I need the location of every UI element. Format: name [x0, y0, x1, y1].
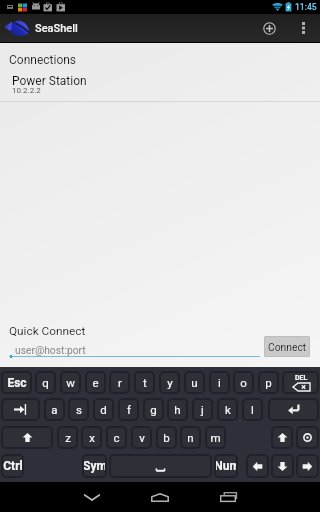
button[interactable]: u: [184, 371, 205, 394]
staticText: p: [265, 376, 272, 389]
staticText: g: [150, 403, 157, 416]
button[interactable]: right: [296, 454, 319, 478]
button[interactable]: k: [217, 398, 238, 421]
button[interactable]: m: [205, 426, 226, 449]
staticText: Power Station: [12, 74, 87, 88]
button[interactable]: Add connection: [256, 14, 283, 42]
button[interactable]: q: [35, 371, 56, 394]
button[interactable]: x: [81, 426, 102, 449]
button[interactable]: p: [258, 371, 279, 394]
staticText: v: [139, 431, 145, 444]
staticText: SeaShell: [35, 22, 78, 35]
staticText: q: [42, 376, 49, 389]
staticText: DEL: [295, 374, 308, 382]
button[interactable]: Connect: [264, 336, 310, 357]
button[interactable]: dot: [296, 426, 319, 449]
staticText: d: [100, 403, 107, 416]
button[interactable]: Hide keyboard: [68, 482, 116, 512]
staticText: Connect: [268, 341, 307, 353]
button[interactable]: s: [68, 398, 89, 421]
staticText: a: [51, 403, 58, 416]
staticText: l: [251, 403, 254, 416]
button[interactable]: e: [85, 371, 106, 394]
button[interactable]: a: [44, 398, 65, 421]
button[interactable]: Home: [136, 482, 184, 512]
staticText: h: [174, 403, 181, 416]
staticText: m: [210, 431, 221, 444]
staticText: k: [225, 403, 231, 416]
button[interactable]: r: [109, 371, 130, 394]
staticText: w: [66, 376, 75, 389]
button[interactable]: v: [131, 426, 152, 449]
button[interactable]: h: [167, 398, 188, 421]
staticText: s: [76, 403, 82, 416]
button[interactable]: z: [57, 426, 78, 449]
button[interactable]: shift: [1, 426, 53, 449]
button[interactable]: j: [192, 398, 213, 421]
staticText: Connections: [9, 53, 77, 67]
staticText: Sym: [83, 459, 107, 473]
button[interactable]: t: [134, 371, 155, 394]
button[interactable]: i: [209, 371, 230, 394]
button[interactable]: Sym: [82, 454, 107, 478]
button[interactable]: left: [246, 454, 269, 478]
button[interactable]: More options: [292, 14, 314, 42]
staticText: i: [218, 376, 221, 389]
button[interactable]: enter: [268, 398, 319, 421]
button[interactable]: Recent apps: [204, 482, 252, 512]
staticText: user@host:port: [15, 344, 86, 356]
button[interactable]: d: [93, 398, 114, 421]
staticText: x: [89, 431, 95, 444]
staticText: z: [65, 431, 71, 444]
button[interactable]: l: [242, 398, 263, 421]
button[interactable]: tab: [1, 398, 40, 421]
staticText: c: [113, 431, 120, 444]
staticText: b: [163, 431, 170, 444]
button[interactable]: Num: [214, 454, 238, 478]
button[interactable]: n: [180, 426, 201, 449]
button[interactable]: o: [233, 371, 254, 394]
staticText: j: [201, 403, 204, 416]
staticText: r: [118, 376, 122, 389]
button[interactable]: g: [143, 398, 164, 421]
button[interactable]: Esc: [1, 371, 32, 394]
staticText: e: [92, 376, 99, 389]
staticText: f: [127, 403, 131, 416]
button[interactable]: b: [156, 426, 177, 449]
staticText: 11:45: [295, 2, 317, 12]
button[interactable]: down: [271, 454, 294, 478]
button[interactable]: y: [159, 371, 180, 394]
button[interactable]: w: [60, 371, 81, 394]
staticText: Quick Connect: [9, 324, 86, 338]
staticText: Num: [214, 459, 238, 473]
staticText: 10.2.2.2: [12, 86, 41, 95]
staticText: Ctrl: [3, 459, 23, 473]
button[interactable]: c: [106, 426, 127, 449]
button[interactable]: Ctrl: [1, 454, 24, 478]
button[interactable]: Power Station: [0, 72, 320, 100]
staticText: Esc: [7, 376, 27, 390]
button[interactable]: space: [109, 454, 212, 478]
button[interactable]: up: [271, 426, 293, 449]
button[interactable]: del: [282, 371, 319, 394]
staticText: n: [187, 431, 194, 444]
button[interactable]: f: [118, 398, 139, 421]
staticText: u: [191, 376, 198, 389]
staticText: y: [167, 376, 173, 389]
staticText: t: [143, 376, 147, 389]
staticText: o: [240, 376, 247, 389]
